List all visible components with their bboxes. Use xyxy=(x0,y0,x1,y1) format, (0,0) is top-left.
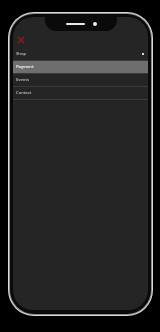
button[interactable]: Shop xyxy=(13,48,148,60)
staticText: Events xyxy=(16,77,29,83)
staticText: Contact xyxy=(16,90,32,96)
button[interactable]: Events xyxy=(13,74,148,86)
staticText: Shop xyxy=(16,51,26,57)
button[interactable]: Contact xyxy=(13,87,148,99)
button[interactable]: Payment xyxy=(13,61,148,73)
button[interactable]: Close menu xyxy=(14,34,28,46)
staticText: Payment xyxy=(16,64,34,70)
